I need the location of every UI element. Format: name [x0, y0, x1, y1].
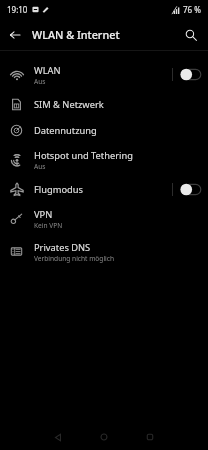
button[interactable]: Privates DNS	[0, 235, 208, 268]
button[interactable]: WLAN umschalten	[180, 68, 201, 81]
button[interactable]: Zurück	[35, 424, 81, 450]
button[interactable]: Flugmodus	[0, 176, 208, 202]
staticText: Verbindung nicht möglich	[34, 254, 115, 263]
button[interactable]: Letzte Apps	[127, 424, 173, 450]
button[interactable]: Back	[0, 20, 30, 50]
staticText: Flugmodus	[34, 183, 83, 196]
staticText: SIM & Netzwerk	[34, 98, 104, 111]
staticText: Datennutzung	[34, 124, 97, 137]
staticText: WLAN	[34, 64, 61, 77]
staticText: Kein VPN	[34, 221, 63, 230]
staticText: 19:10	[7, 4, 28, 15]
button[interactable]: Flugmodus umschalten	[180, 183, 201, 196]
staticText: VPN	[34, 208, 53, 221]
button[interactable]: Search	[176, 20, 206, 50]
staticText: Aus	[34, 162, 46, 171]
button[interactable]: Startbildschirm	[81, 424, 127, 450]
staticText: Aus	[34, 77, 46, 86]
button[interactable]: Datennutzung	[0, 117, 208, 143]
button[interactable]: VPN	[0, 202, 208, 235]
button[interactable]: Hotspot und Tethering	[0, 143, 208, 176]
staticText: 76 %	[183, 4, 201, 15]
button[interactable]: WLAN	[0, 58, 208, 91]
staticText: Hotspot und Tethering	[34, 149, 133, 162]
staticText: WLAN & Internet	[32, 27, 120, 42]
button[interactable]: SIM & Netzwerk	[0, 91, 208, 117]
staticText: Privates DNS	[34, 241, 91, 254]
